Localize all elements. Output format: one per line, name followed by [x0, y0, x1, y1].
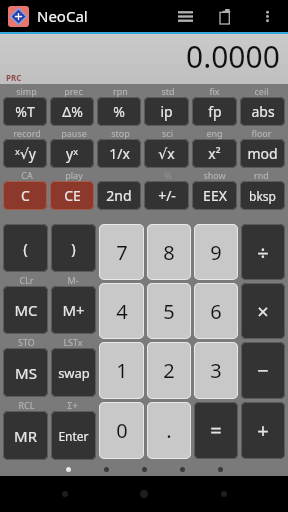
staticText: 5	[163, 298, 175, 325]
button[interactable]: Enter	[51, 411, 96, 460]
button[interactable]: Back	[50, 479, 80, 509]
button[interactable]: 2nd	[97, 181, 141, 210]
button[interactable]: MC	[3, 286, 48, 334]
staticText: )	[71, 238, 76, 258]
button[interactable]: 8	[147, 224, 191, 280]
button[interactable]: C	[3, 181, 47, 210]
staticText: %	[164, 169, 172, 181]
staticText: x²	[208, 144, 221, 163]
button[interactable]: .	[147, 402, 191, 459]
button[interactable]: abs	[240, 97, 285, 126]
staticText: CLr	[19, 274, 34, 286]
button[interactable]: x²	[192, 139, 237, 168]
button[interactable]: =	[194, 402, 238, 459]
staticText: record	[13, 127, 41, 139]
button[interactable]: Δ%	[50, 97, 94, 126]
button[interactable]: bksp	[240, 181, 285, 210]
staticText: stop	[111, 127, 130, 139]
staticText: Σ+	[67, 399, 78, 411]
staticText: −	[257, 357, 269, 384]
staticText: √x	[158, 144, 175, 163]
button[interactable]: EEX	[192, 181, 237, 210]
button[interactable]: Home	[129, 479, 159, 509]
staticText: CE	[64, 186, 81, 205]
staticText: eng	[206, 127, 223, 139]
button[interactable]: ˣ√y	[3, 139, 47, 168]
staticText: 1	[116, 357, 128, 384]
button[interactable]: mod	[240, 139, 285, 168]
button[interactable]: 9	[194, 224, 238, 280]
button[interactable]: 1/x	[97, 139, 141, 168]
staticText: (	[23, 238, 28, 258]
button[interactable]: Menu	[170, 1, 200, 31]
staticText: STO	[18, 336, 35, 348]
staticText: show	[203, 169, 226, 181]
button[interactable]: Recents	[209, 479, 239, 509]
staticText: ip	[160, 102, 173, 121]
staticText: M+	[62, 300, 85, 320]
staticText: play	[65, 169, 83, 181]
button[interactable]: swap	[51, 348, 96, 397]
staticText: simp	[16, 85, 37, 97]
button[interactable]: %T	[3, 97, 47, 126]
button[interactable]: +	[241, 402, 285, 459]
staticText: fix	[209, 85, 220, 97]
button[interactable]: −	[241, 342, 285, 399]
button[interactable]: +/-	[144, 181, 189, 210]
staticText: yˣ	[66, 144, 78, 163]
staticText: fp	[208, 102, 222, 121]
staticText: MR	[14, 426, 37, 446]
staticText: %T	[15, 102, 35, 121]
button[interactable]: 1	[99, 342, 144, 399]
button[interactable]: CE	[50, 181, 94, 210]
staticText: mod	[247, 144, 278, 163]
button[interactable]: 0	[99, 402, 144, 459]
button[interactable]: 3	[194, 342, 238, 399]
staticText: CA	[21, 169, 33, 181]
staticText: pause	[61, 127, 87, 139]
staticText: ÷	[257, 239, 269, 266]
button[interactable]: 7	[99, 224, 144, 280]
staticText: bksp	[249, 188, 276, 204]
button[interactable]: yˣ	[50, 139, 94, 168]
staticText: 7	[116, 239, 128, 266]
staticText: M-	[67, 274, 79, 286]
button[interactable]: ip	[144, 97, 189, 126]
staticText: +/-	[158, 186, 176, 205]
staticText: +	[257, 417, 269, 444]
button[interactable]: 5	[147, 283, 191, 339]
staticText: Δ%	[62, 102, 83, 121]
staticText: std	[161, 85, 175, 97]
button[interactable]: MS	[3, 348, 48, 397]
button[interactable]: ÷	[241, 224, 285, 280]
button[interactable]: (	[3, 224, 48, 272]
staticText: rnd	[254, 169, 269, 181]
button[interactable]: MR	[3, 411, 48, 460]
button[interactable]: 4	[99, 283, 144, 339]
staticText: =	[210, 417, 222, 444]
staticText: 0	[116, 417, 128, 444]
button[interactable]: fp	[192, 97, 237, 126]
button[interactable]: More options	[254, 3, 280, 29]
staticText: 2	[163, 357, 175, 384]
button[interactable]: %	[97, 97, 141, 126]
staticText: .	[166, 417, 172, 444]
staticText: ×	[257, 298, 269, 325]
button[interactable]: 6	[194, 283, 238, 339]
button[interactable]: Pages	[212, 1, 242, 31]
button[interactable]: M+	[51, 286, 96, 334]
staticText: 3	[210, 357, 222, 384]
staticText: floor	[251, 127, 272, 139]
button[interactable]: 2	[147, 342, 191, 399]
staticText: NeoCal	[37, 6, 88, 26]
button[interactable]: )	[51, 224, 96, 272]
staticText: MS	[15, 363, 37, 383]
staticText: 2nd	[106, 186, 132, 205]
staticText: RCL	[18, 399, 35, 411]
button[interactable]: √x	[144, 139, 189, 168]
button[interactable]: ×	[241, 283, 285, 339]
staticText: 6	[210, 298, 222, 325]
staticText: C	[21, 186, 30, 205]
staticText: 1/x	[109, 144, 130, 163]
staticText: ceil	[254, 85, 269, 97]
